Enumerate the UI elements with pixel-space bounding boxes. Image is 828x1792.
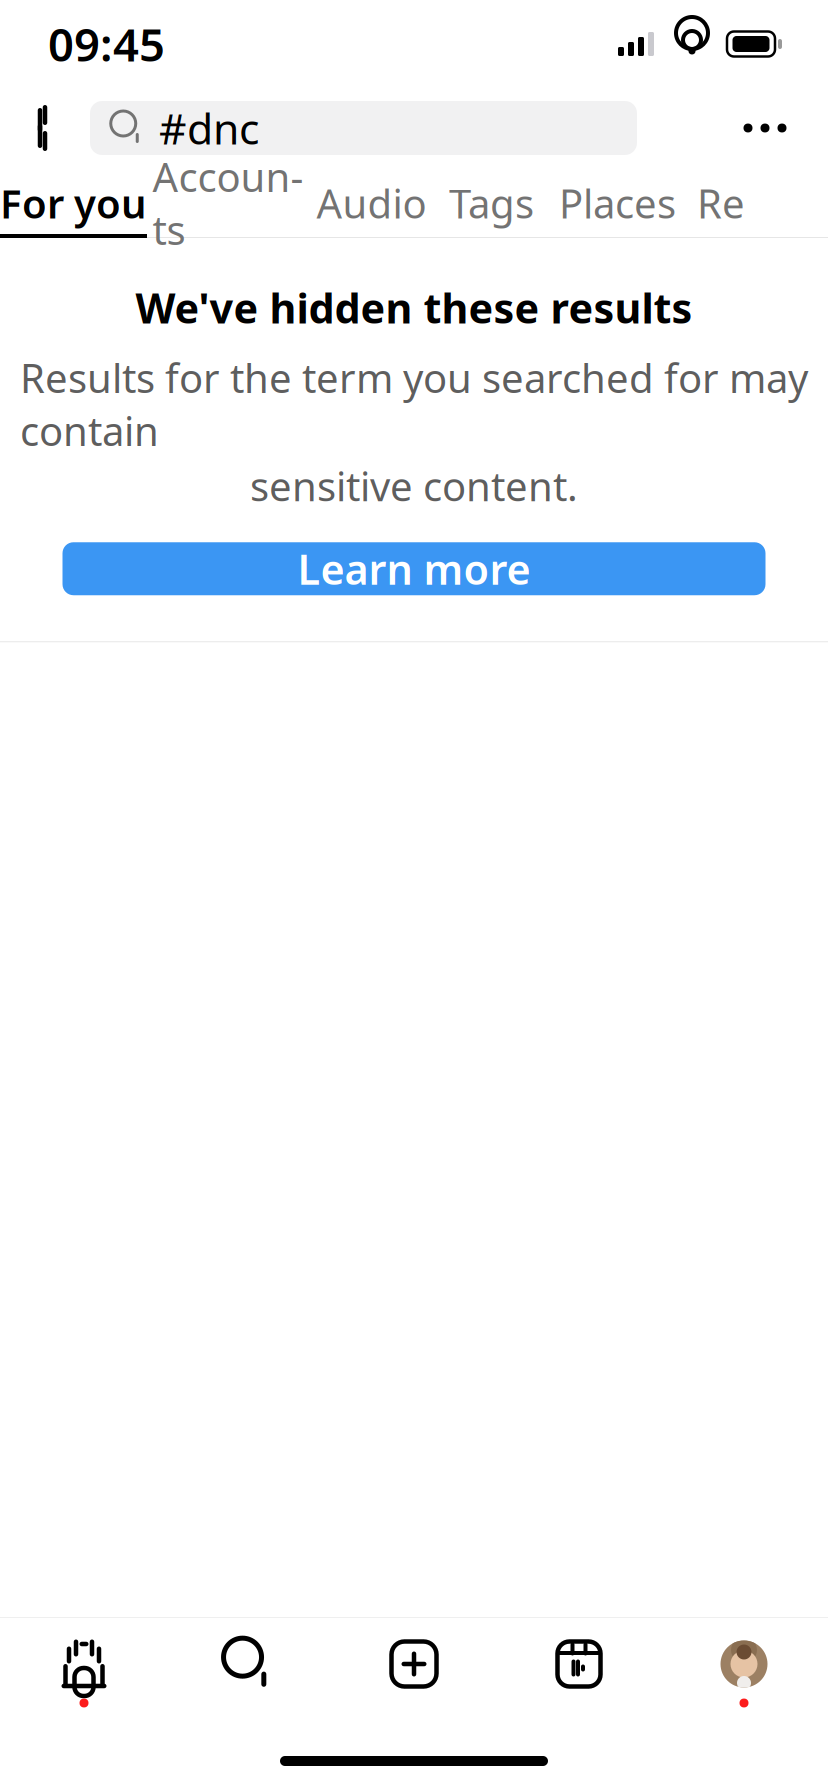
staticText: #dnc (159, 100, 259, 156)
button[interactable]: Accounts (147, 169, 309, 237)
staticText: 09:45 (48, 14, 165, 74)
button[interactable]: Tags (434, 169, 549, 237)
staticText: Re (697, 176, 745, 229)
button[interactable]: Reels (496, 1618, 661, 1730)
staticText: Places (559, 176, 676, 229)
button[interactable]: Create (331, 1618, 496, 1730)
staticText: sensitive content. (250, 459, 578, 512)
staticText: Accounts (152, 150, 303, 256)
button[interactable]: Profile (661, 1618, 826, 1730)
button[interactable]: Search (166, 1618, 331, 1730)
button[interactable]: Back (14, 99, 72, 157)
staticText: For you (0, 176, 147, 229)
staticText: Learn more (297, 541, 530, 596)
button[interactable]: Places (549, 169, 686, 237)
staticText: Results for the term you searched for ma… (20, 351, 808, 457)
button[interactable]: For you (0, 169, 147, 237)
staticText: Audio (316, 176, 426, 229)
staticText: We've hidden these results (135, 280, 692, 335)
button[interactable]: More options (722, 99, 808, 157)
button[interactable]: Re (686, 169, 756, 237)
staticText: Tags (449, 176, 534, 229)
button[interactable]: Learn more (62, 542, 765, 595)
button[interactable]: Home (1, 1618, 166, 1730)
button[interactable]: Audio (309, 169, 434, 237)
